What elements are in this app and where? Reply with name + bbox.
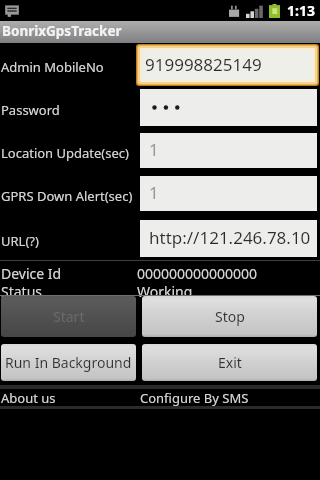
staticText: 000000000000000 (137, 264, 258, 279)
button[interactable]: 919998825149 (142, 50, 313, 80)
button[interactable]: Run In Background (1, 344, 136, 381)
staticText: Location Update(sec) (1, 144, 140, 162)
staticText: 919998825149 (145, 53, 262, 76)
button[interactable] (140, 89, 317, 126)
staticText: http://121.246.78.10 (149, 226, 311, 249)
staticText: GPRS Down Alert(sec) (1, 187, 140, 205)
staticText: Status (1, 282, 137, 297)
staticText: Working (137, 282, 193, 297)
button[interactable]: Start (1, 296, 136, 337)
staticText: Stop (215, 307, 245, 326)
staticText: Exit (218, 353, 242, 372)
staticText: BonrixGpsTracker (2, 22, 122, 40)
button[interactable]: Configure By SMS (140, 389, 320, 406)
staticText: Run In Background (5, 353, 132, 372)
button[interactable]: Stop (142, 296, 317, 337)
staticText: Password (1, 101, 140, 119)
button[interactable]: Exit (142, 344, 317, 381)
staticText: Start (53, 307, 85, 326)
button[interactable]: http://121.246.78.10 (140, 220, 317, 257)
staticText: 1 (149, 181, 159, 204)
staticText: 1 (149, 138, 159, 161)
button[interactable]: 1 (140, 176, 317, 211)
staticText: Device Id (1, 264, 137, 279)
staticText: URL(?) (1, 232, 140, 250)
button[interactable]: About us (0, 389, 140, 406)
button[interactable]: 1 (140, 133, 317, 168)
staticText: Admin MobileNo (1, 58, 140, 76)
other: Messages (3, 4, 21, 18)
staticText: 1:13 (287, 1, 315, 20)
staticText: Configure By SMS (140, 389, 249, 406)
staticText: About us (1, 389, 56, 406)
